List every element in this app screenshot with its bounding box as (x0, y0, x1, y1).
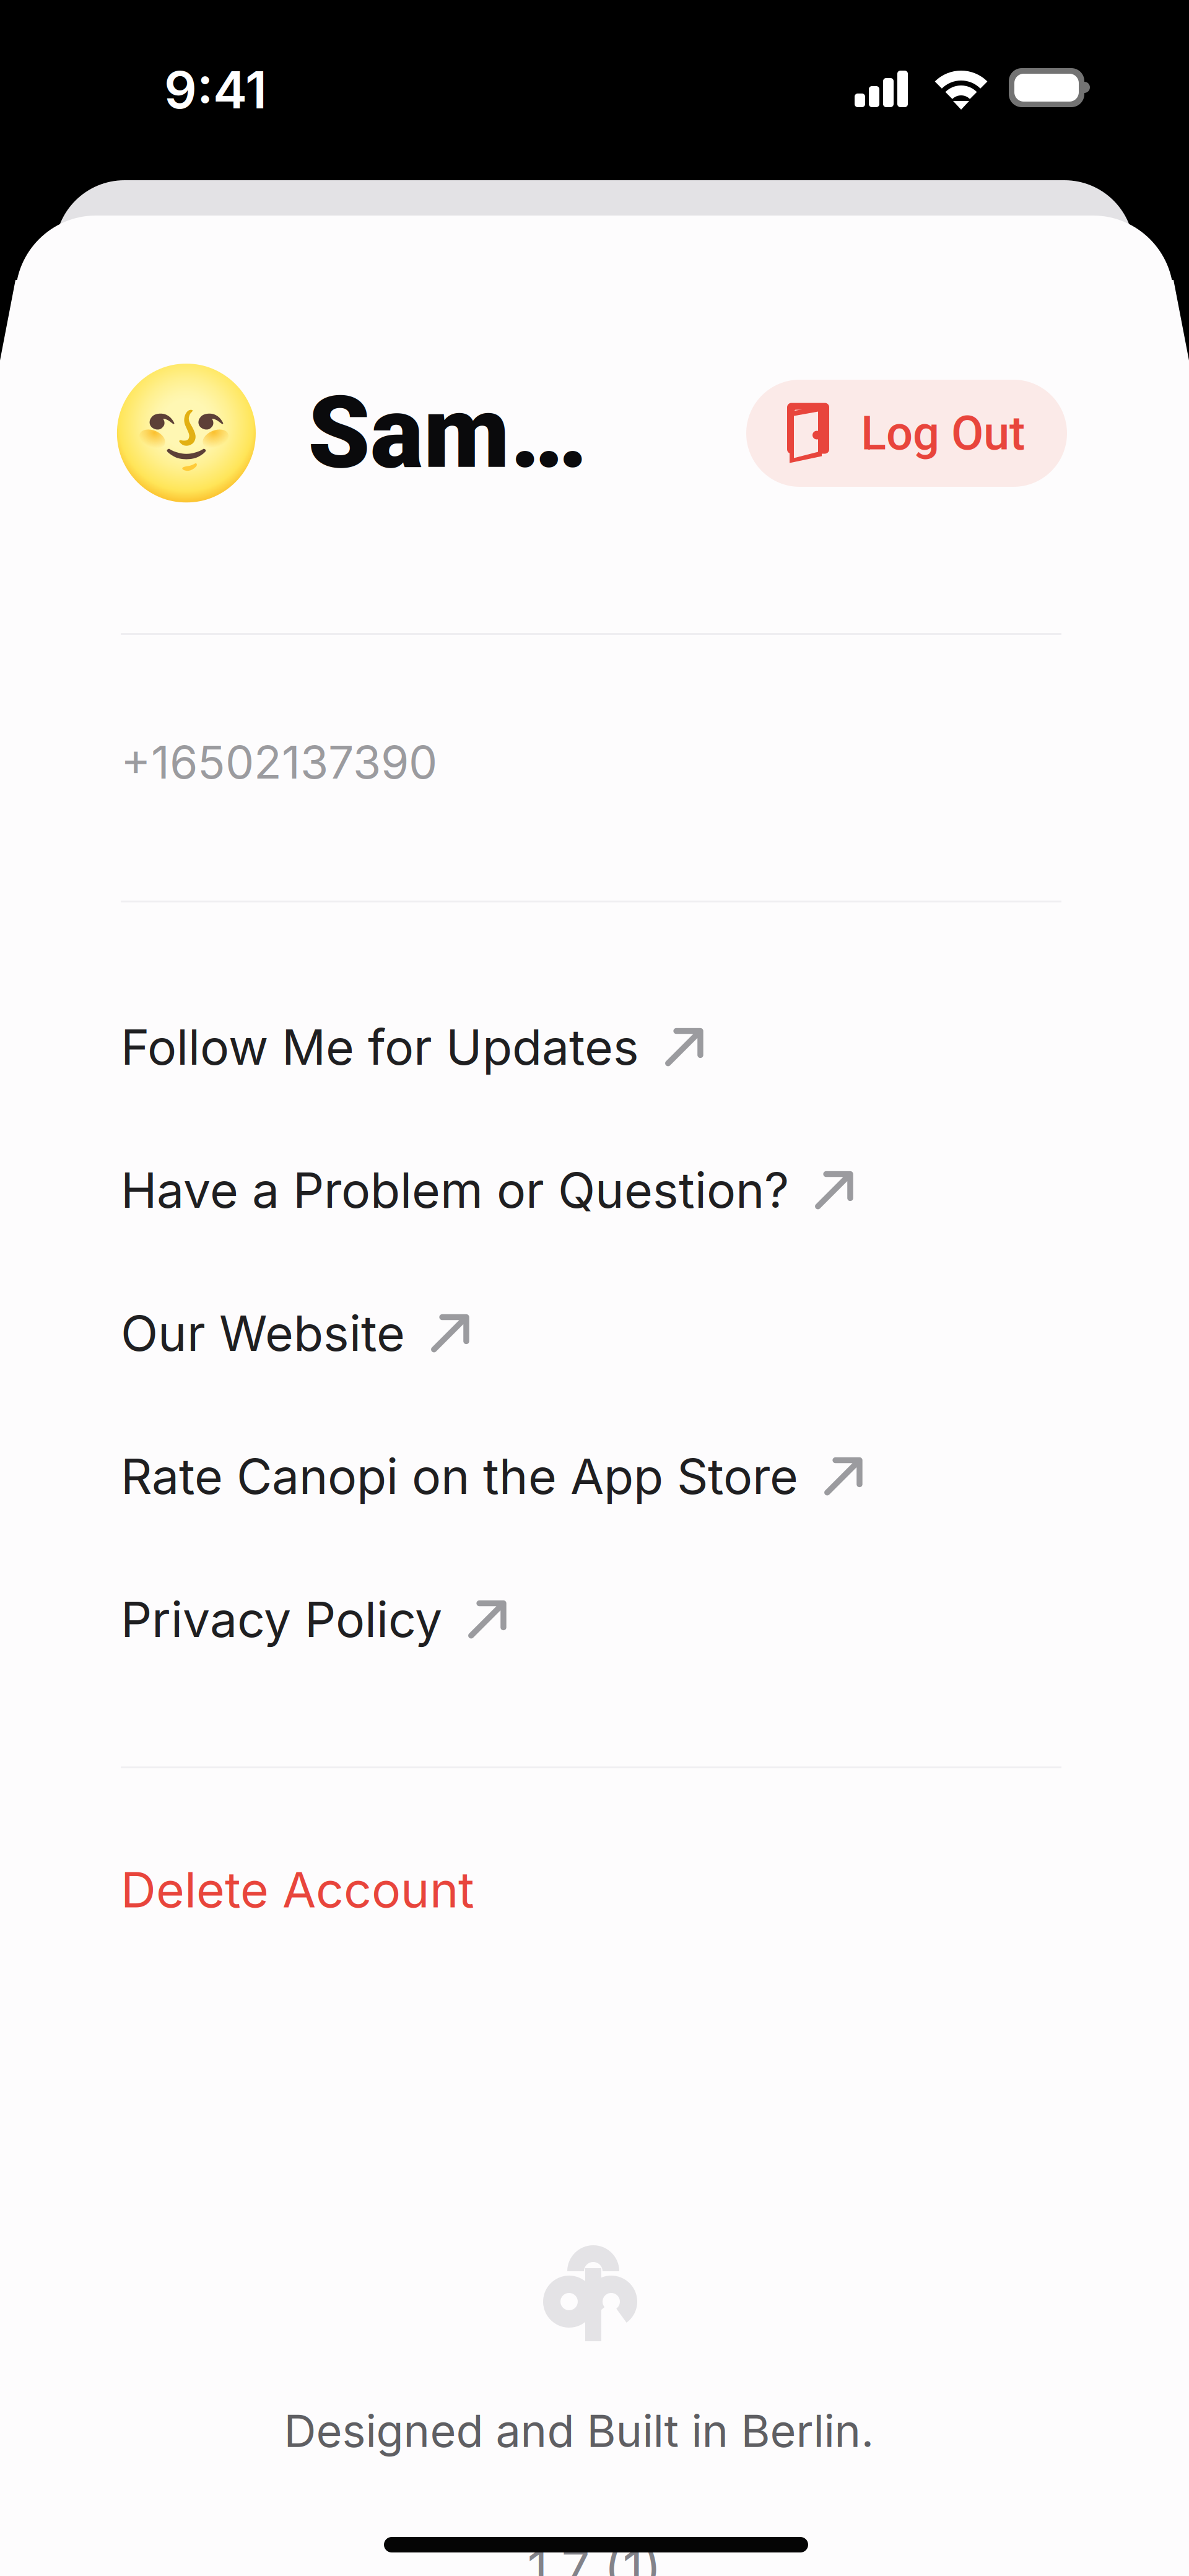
button[interactable]: Rate Canopi on the App Store (121, 1405, 1061, 1548)
staticText: Our Website (121, 1304, 405, 1363)
staticText: 9:41 (164, 59, 267, 121)
staticText: Delete Account (121, 1860, 474, 1919)
staticText: +16502137390 (121, 735, 437, 790)
button[interactable]: Follow Me for Updates (121, 976, 1061, 1119)
button[interactable]: Log Out (746, 380, 1067, 487)
button[interactable]: Privacy Policy (121, 1548, 1061, 1691)
staticText: 🌝 (108, 359, 265, 507)
staticText: Sam… (308, 374, 587, 491)
button[interactable]: Our Website (121, 1262, 1061, 1405)
staticText: Privacy Policy (121, 1590, 442, 1649)
staticText: 1.7 (1) (527, 2538, 662, 2576)
staticText: Follow Me for Updates (121, 1018, 639, 1077)
staticText: Have a Problem or Question? (121, 1161, 789, 1220)
button[interactable]: Delete Account (121, 1831, 1061, 1949)
staticText: Log Out (861, 406, 1025, 461)
staticText: Designed and Built in Berlin. (284, 2404, 874, 2458)
button[interactable]: Have a Problem or Question? (121, 1119, 1061, 1262)
staticText: Rate Canopi on the App Store (121, 1447, 798, 1506)
